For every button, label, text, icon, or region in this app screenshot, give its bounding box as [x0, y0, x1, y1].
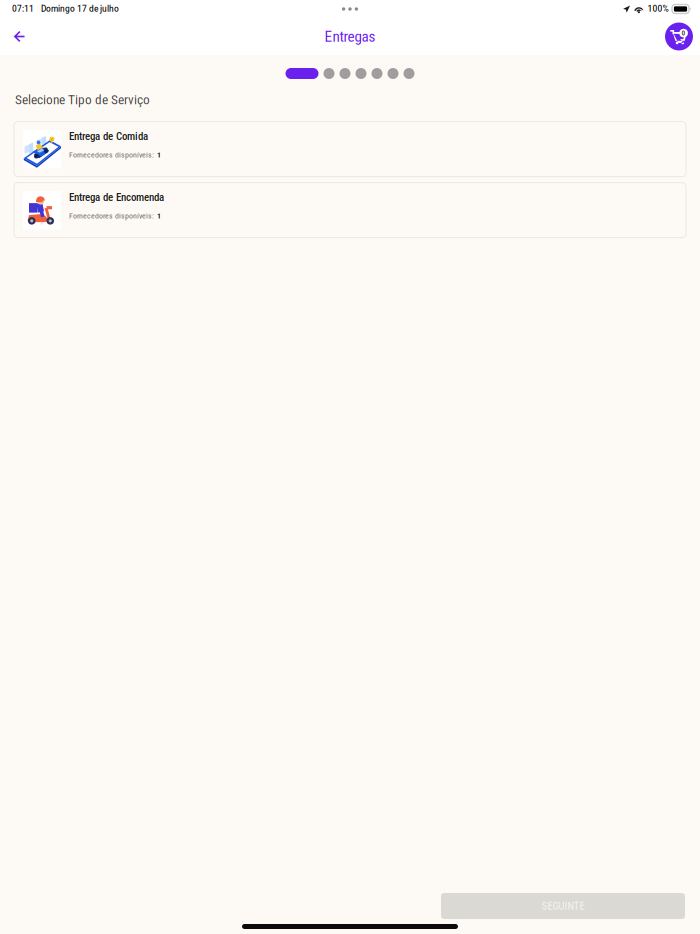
staticText: Entregas: [324, 28, 375, 45]
button[interactable]: SEGUINTE: [441, 893, 685, 919]
staticText: SEGUINTE: [541, 900, 584, 912]
button[interactable]: Entrega de Comida: [14, 122, 686, 177]
staticText: Fornecedores disponíveis:: [69, 211, 154, 220]
staticText: Entrega de Comida: [69, 130, 148, 143]
staticText: 0: [682, 29, 686, 37]
staticText: 1: [157, 211, 161, 220]
button[interactable]: Voltar: [1, 18, 37, 55]
staticText: 07:11: [12, 4, 34, 14]
staticText: Domingo 17 de julho: [41, 4, 119, 14]
staticText: Fornecedores disponíveis:: [69, 150, 154, 159]
staticText: 1: [157, 150, 161, 159]
staticText: Entrega de Encomenda: [69, 191, 164, 204]
button[interactable]: Entrega de Encomenda: [14, 183, 686, 238]
staticText: 100%: [647, 4, 668, 14]
staticText: Selecione Tipo de Serviço: [15, 92, 150, 108]
button[interactable]: Carrinho: [660, 17, 698, 55]
